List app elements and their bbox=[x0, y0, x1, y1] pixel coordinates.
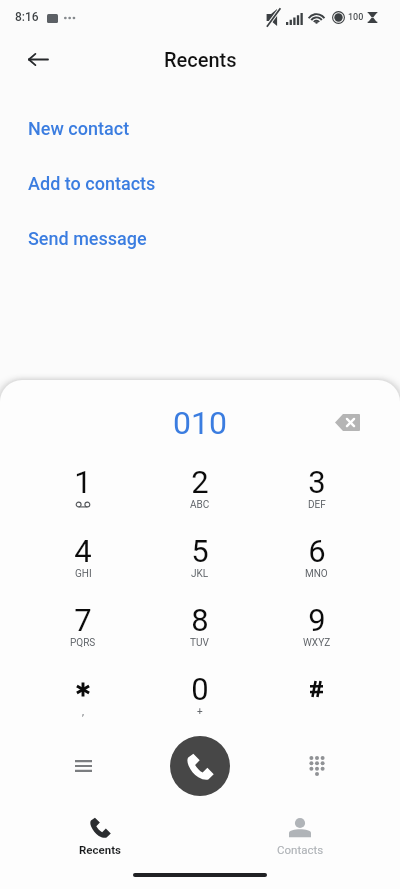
staticText: ABC bbox=[190, 499, 210, 511]
button[interactable]: Call bbox=[170, 736, 230, 796]
staticText: PQRS bbox=[70, 637, 96, 649]
staticText: 5 bbox=[191, 533, 209, 569]
staticText: 1 bbox=[74, 464, 92, 500]
button[interactable]: , bbox=[25, 662, 141, 731]
staticText: Send message bbox=[28, 228, 147, 249]
staticText: Add to contacts bbox=[28, 173, 156, 194]
staticText: New contact bbox=[28, 118, 130, 139]
button[interactable]: 5 bbox=[141, 524, 258, 593]
button[interactable]: 8 bbox=[141, 593, 258, 662]
staticText: 6 bbox=[308, 533, 326, 569]
button[interactable]: 1 bbox=[25, 455, 141, 524]
button[interactable]: 2 bbox=[141, 455, 258, 524]
staticText: DEF bbox=[308, 499, 326, 511]
button[interactable]: Backspace bbox=[325, 400, 369, 444]
button[interactable]: Recents bbox=[0, 810, 200, 862]
button[interactable]: Send message bbox=[0, 211, 400, 266]
staticText: Recents bbox=[79, 843, 122, 856]
staticText: TUV bbox=[190, 637, 209, 649]
button[interactable]: Contacts bbox=[200, 810, 400, 862]
staticText: 4 bbox=[74, 533, 92, 569]
staticText: 010 bbox=[173, 404, 227, 442]
button[interactable] bbox=[258, 662, 375, 731]
staticText: 8:16 bbox=[15, 10, 39, 24]
staticText: WXYZ bbox=[303, 637, 331, 649]
button[interactable]: 3 bbox=[258, 455, 375, 524]
button[interactable]: 4 bbox=[25, 524, 141, 593]
staticText: 8 bbox=[191, 602, 209, 638]
staticText: , bbox=[82, 706, 84, 718]
button[interactable]: 9 bbox=[258, 593, 375, 662]
button[interactable]: New contact bbox=[0, 101, 400, 156]
staticText: 7 bbox=[74, 602, 92, 638]
staticText: MNO bbox=[305, 568, 328, 580]
staticText: Contacts bbox=[277, 843, 324, 856]
staticText: 2 bbox=[191, 464, 209, 500]
staticText: JKL bbox=[191, 568, 209, 580]
button[interactable]: Add to contacts bbox=[0, 156, 400, 211]
staticText: 0 bbox=[191, 671, 209, 707]
staticText: 9 bbox=[308, 602, 326, 638]
button[interactable]: Dialpad bbox=[294, 743, 340, 789]
button[interactable]: More options bbox=[60, 743, 106, 789]
button[interactable]: 0 bbox=[141, 662, 258, 731]
staticText: Recents bbox=[164, 48, 237, 71]
button[interactable]: 7 bbox=[25, 593, 141, 662]
button[interactable]: 6 bbox=[258, 524, 375, 593]
button[interactable]: Back bbox=[16, 37, 60, 81]
staticText: + bbox=[197, 706, 203, 718]
staticText: GHI bbox=[75, 568, 92, 580]
staticText: 100 bbox=[348, 12, 364, 23]
staticText: 3 bbox=[308, 464, 326, 500]
